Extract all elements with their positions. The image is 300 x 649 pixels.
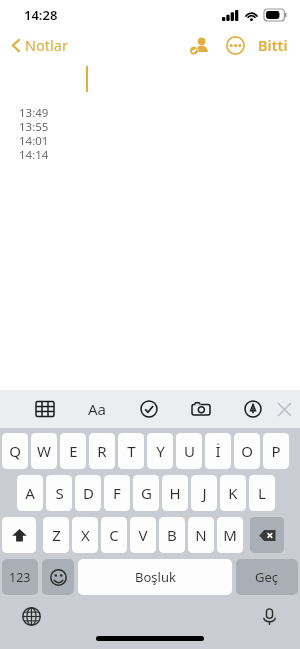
button[interactable]: Shift — [2, 517, 36, 553]
button[interactable]: Y — [147, 433, 173, 469]
staticText: A — [25, 483, 35, 503]
staticText: X — [81, 525, 90, 545]
button[interactable]: K — [220, 475, 246, 511]
staticText: W — [37, 441, 51, 461]
button[interactable]: O — [234, 433, 260, 469]
button[interactable]: M — [217, 517, 243, 553]
staticText: 14:28 — [24, 6, 58, 24]
staticText: O — [241, 441, 253, 461]
button[interactable]: J — [191, 475, 217, 511]
staticText: 14:01 — [19, 133, 49, 147]
staticText: J — [202, 483, 207, 503]
button[interactable]: Klavyeyi kapat — [268, 393, 300, 425]
staticText: V — [138, 525, 148, 545]
button[interactable]: U — [176, 433, 202, 469]
staticText: Z — [52, 525, 61, 545]
staticText: B — [167, 525, 177, 545]
button[interactable]: C — [101, 517, 127, 553]
button[interactable]: Kamera — [186, 394, 216, 424]
button[interactable]: Biçim — [82, 394, 112, 424]
staticText: T — [127, 441, 136, 461]
staticText: N — [195, 525, 207, 545]
button[interactable]: S — [46, 475, 72, 511]
button[interactable]: Notlar — [8, 31, 72, 59]
staticText: 13:55 — [19, 119, 49, 133]
staticText: U — [184, 441, 195, 461]
button[interactable]: R — [89, 433, 115, 469]
button[interactable]: Tablo — [30, 394, 60, 424]
staticText: L — [258, 483, 266, 503]
button[interactable]: B — [159, 517, 185, 553]
button[interactable]: Diğer — [222, 32, 248, 58]
button[interactable]: L — [249, 475, 275, 511]
button[interactable]: Çizim — [238, 394, 268, 424]
staticText: Aa — [88, 399, 107, 419]
staticText: Bitti — [258, 35, 288, 55]
staticText: Boşluk — [135, 568, 176, 586]
button[interactable]: Sil — [250, 517, 284, 553]
button[interactable]: Q — [2, 433, 28, 469]
staticText: R — [97, 441, 107, 461]
staticText: 13:49 — [19, 105, 49, 119]
staticText: Y — [156, 441, 165, 461]
staticText: K — [228, 483, 238, 503]
button[interactable]: Paylaşılan not katılımcıları — [186, 32, 212, 58]
button[interactable]: 123 — [2, 559, 38, 595]
button[interactable]: Z — [43, 517, 69, 553]
button[interactable]: P — [263, 433, 289, 469]
button[interactable]: Dikte — [254, 601, 284, 631]
staticText: H — [169, 483, 181, 503]
staticText: P — [271, 441, 281, 461]
button[interactable]: İ — [205, 433, 231, 469]
button[interactable]: Geç — [236, 559, 298, 595]
button[interactable]: H — [162, 475, 188, 511]
button[interactable]: Klavye dilini değiştir — [16, 601, 46, 631]
button[interactable]: D — [75, 475, 101, 511]
staticText: M — [223, 525, 237, 545]
button[interactable]: Boşluk — [78, 559, 232, 595]
staticText: S — [55, 483, 64, 503]
button[interactable]: Emoji — [42, 559, 74, 595]
staticText: G — [141, 483, 152, 503]
button[interactable]: Bitti — [256, 31, 290, 59]
button[interactable]: N — [188, 517, 214, 553]
staticText: 123 — [9, 569, 31, 586]
staticText: İ — [215, 441, 221, 461]
staticText: Geç — [255, 568, 279, 586]
button[interactable]: A — [17, 475, 43, 511]
button[interactable]: V — [130, 517, 156, 553]
staticText: E — [69, 441, 78, 461]
staticText: 14:14 — [19, 147, 49, 161]
staticText: F — [113, 483, 121, 503]
button[interactable]: W — [31, 433, 57, 469]
button[interactable]: E — [60, 433, 86, 469]
button[interactable]: X — [72, 517, 98, 553]
button[interactable]: F — [104, 475, 130, 511]
button[interactable]: Kontrol listesi — [134, 394, 164, 424]
button[interactable]: T — [118, 433, 144, 469]
staticText: D — [83, 483, 94, 503]
staticText: Q — [9, 441, 21, 461]
button[interactable]: G — [133, 475, 159, 511]
staticText: C — [109, 525, 119, 545]
staticText: Notlar — [25, 35, 68, 55]
